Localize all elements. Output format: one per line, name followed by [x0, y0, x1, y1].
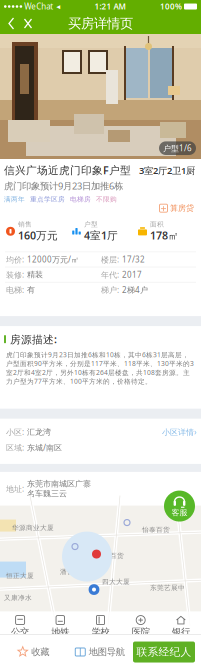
staticText: 恒正大厦	[6, 572, 34, 580]
staticText: 医院	[132, 626, 150, 638]
staticText: 3室2厅2卫1厨	[139, 164, 195, 177]
staticText: 不限购	[96, 195, 117, 203]
staticText: 均价:	[6, 254, 24, 265]
staticText: 重点学区房	[30, 195, 65, 203]
staticText: 电梯:	[6, 284, 24, 295]
staticText: 梯户:	[101, 284, 119, 295]
staticText: 装修:	[6, 269, 24, 280]
staticText: 小区详情›	[162, 427, 196, 437]
staticText: 地铁	[51, 626, 69, 638]
staticText: 东莞市南城区广寨名车魏三云	[27, 479, 91, 499]
staticText: 区域:	[6, 442, 24, 453]
button[interactable]: 公交	[0, 612, 40, 642]
button[interactable]: 算房贷	[157, 203, 196, 213]
staticText: 学校	[91, 626, 109, 638]
staticText: 怡泰百货	[142, 526, 170, 534]
staticText: 虎门印象预计9月23日加推6栋和10栋，其中6栋31层高层，户型面积90平方米，…	[6, 350, 194, 386]
staticText: 又康净水	[4, 594, 32, 602]
staticText: 2梯4户	[122, 284, 148, 295]
staticText: 楼层:	[101, 254, 119, 265]
staticText: 算房贷	[170, 203, 194, 213]
staticText: 面积	[150, 220, 164, 228]
staticText: 地图导航	[89, 646, 125, 658]
button[interactable]: 学校	[80, 612, 121, 642]
staticText: 公交	[11, 626, 29, 638]
staticText: 户型	[84, 220, 98, 228]
button[interactable]: 联系经纪人	[133, 641, 195, 662]
staticText: 12000万元/㎡	[27, 254, 79, 265]
staticText: 东莞艺展中	[150, 584, 185, 592]
staticText: 17/32	[122, 254, 145, 265]
staticText: 销售	[18, 220, 32, 228]
staticText: 2017	[122, 269, 142, 280]
staticText: 4室1厅	[84, 228, 118, 242]
staticText: 虎门印象预计9月23日加推6栋	[4, 180, 123, 192]
staticText: WeChat	[22, 1, 53, 12]
staticText: 电梯房	[70, 195, 91, 203]
button[interactable]: 医院	[121, 612, 161, 642]
staticText: 178㎡	[150, 228, 179, 242]
staticText: 有	[27, 285, 35, 295]
staticText: 收藏	[31, 646, 49, 658]
staticText: 满两年	[4, 195, 25, 203]
staticText: 100%	[160, 1, 182, 12]
staticText: 房源描述:	[10, 332, 57, 346]
staticText: 东城/南区	[27, 442, 62, 453]
button[interactable]: 小区详情›	[162, 427, 196, 437]
button[interactable]: 银行	[161, 612, 201, 642]
button[interactable]: Back	[5, 13, 19, 34]
staticText: 信良百货	[96, 552, 124, 560]
staticText: 联系经纪人	[136, 645, 191, 658]
button[interactable]: 地铁	[40, 612, 80, 642]
staticText: 160万元	[18, 228, 58, 242]
staticText: 买房详情页	[68, 15, 133, 32]
staticText: 潘仁园	[60, 568, 81, 576]
staticText: 年代:	[101, 269, 119, 280]
staticText: 四大大厦	[102, 578, 130, 586]
button[interactable]: 地图导航	[66, 634, 133, 670]
button[interactable]: 客服	[164, 491, 195, 522]
staticText: 客服	[171, 508, 187, 517]
staticText: ◂	[53, 2, 60, 11]
staticText: 华源商业大厦	[12, 524, 54, 532]
staticText: 户型1/6	[163, 143, 192, 153]
button[interactable]: 收藏	[0, 634, 66, 670]
staticText: 银行	[172, 626, 190, 638]
button[interactable]: Close	[21, 13, 35, 34]
staticText: 地址:	[6, 483, 24, 494]
staticText: 小区:	[6, 427, 24, 437]
staticText: 信兴广场近虎门印象F户型	[4, 163, 131, 177]
staticText: 1:21 AM	[95, 1, 126, 12]
staticText: 精装	[27, 270, 43, 279]
staticText: 汇龙湾	[27, 427, 51, 437]
